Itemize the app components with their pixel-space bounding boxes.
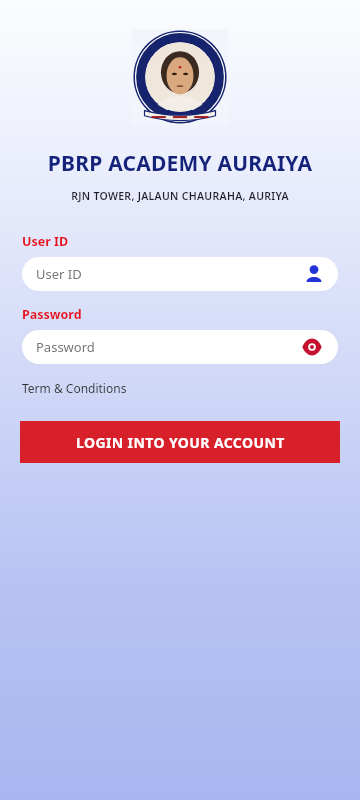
button[interactable]: LOGIN INTO YOUR ACCOUNT — [20, 421, 340, 463]
button[interactable]: Password — [22, 330, 338, 364]
staticText: User ID — [36, 265, 303, 283]
staticText: PBRP ACADEMY AURAIYA — [0, 149, 360, 178]
button[interactable]: Show password — [299, 334, 325, 360]
button[interactable]: Term & Conditions — [22, 380, 127, 396]
staticText: Password — [36, 338, 299, 356]
button[interactable]: User account — [303, 263, 325, 285]
staticText: RJN TOWER, JALAUN CHAURAHA, AURIYA — [0, 189, 360, 203]
staticText: Term & Conditions — [22, 380, 127, 396]
staticText: Password — [22, 306, 82, 323]
button[interactable]: User ID — [22, 257, 338, 291]
staticText: LOGIN INTO YOUR ACCOUNT — [76, 433, 285, 452]
staticText: User ID — [22, 233, 69, 250]
